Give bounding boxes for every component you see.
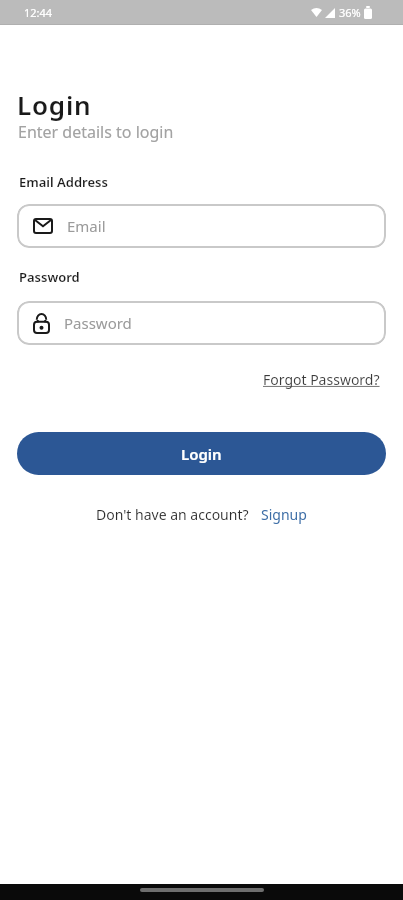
button[interactable]: Signup <box>261 505 307 524</box>
button[interactable]: Email <box>17 204 386 248</box>
staticText: Password <box>64 313 132 333</box>
button[interactable]: Login <box>17 432 386 475</box>
staticText: Login <box>181 444 222 464</box>
staticText: Password <box>19 268 80 286</box>
staticText: Email Address <box>19 173 108 191</box>
button[interactable]: Forgot Password? <box>263 370 380 389</box>
staticText: 36% <box>339 5 361 20</box>
staticText: Email <box>67 216 106 236</box>
button[interactable]: Password <box>17 301 386 345</box>
staticText: Don't have an account? <box>96 505 249 524</box>
staticText: Enter details to login <box>18 121 174 143</box>
staticText: 12:44 <box>24 5 53 20</box>
staticText: Login <box>17 87 92 122</box>
